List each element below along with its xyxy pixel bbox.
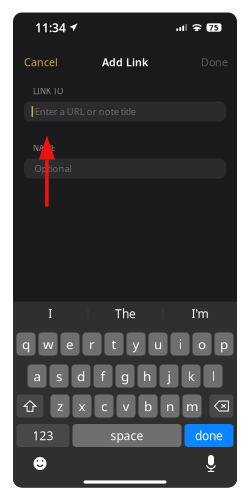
button[interactable]: h (137, 364, 156, 387)
staticText: c (101, 397, 107, 415)
staticText: 11:34 (35, 19, 66, 35)
button[interactable]: p (214, 332, 233, 355)
button[interactable]: f (93, 364, 112, 387)
button[interactable]: c (94, 394, 113, 417)
button[interactable]: e (60, 332, 79, 355)
staticText: I (48, 305, 52, 321)
staticText: a (33, 367, 40, 385)
staticText: k (187, 367, 194, 385)
button[interactable]: space (72, 424, 181, 447)
button[interactable]: k (181, 364, 200, 387)
button[interactable]: s (49, 364, 68, 387)
button[interactable]: Dictation (198, 452, 224, 474)
button[interactable]: Emoji keyboard (27, 452, 53, 474)
staticText: t (111, 335, 116, 353)
staticText: f (100, 367, 105, 385)
staticText: 123 (32, 427, 53, 443)
staticText: d (77, 367, 85, 385)
button[interactable]: a (27, 364, 46, 387)
staticText: I'm (192, 305, 209, 321)
staticText: Cancel (24, 55, 58, 69)
button[interactable]: 123 (16, 424, 69, 447)
button[interactable]: Shift (16, 394, 43, 417)
staticText: x (78, 397, 85, 415)
button[interactable]: n (160, 394, 179, 417)
button[interactable]: w (38, 332, 57, 355)
button[interactable]: t (104, 332, 123, 355)
button[interactable]: l (203, 364, 222, 387)
staticText: y (132, 335, 139, 353)
button[interactable]: done (184, 424, 233, 447)
button[interactable]: m (182, 394, 201, 417)
staticText: 75 (209, 22, 219, 33)
button[interactable]: Delete (209, 394, 233, 417)
staticText: v (122, 397, 129, 415)
staticText: s (56, 367, 62, 385)
staticText: The (115, 305, 136, 321)
button[interactable]: Enter a URL or note title (24, 101, 226, 121)
staticText: q (22, 335, 30, 353)
button[interactable]: Done (192, 50, 237, 74)
staticText: j (167, 367, 170, 385)
staticText: w (43, 335, 53, 353)
button[interactable]: I'm (163, 301, 237, 325)
button[interactable]: I (13, 301, 88, 325)
staticText: Add Link (102, 55, 148, 69)
button[interactable]: b (138, 394, 157, 417)
button[interactable]: g (115, 364, 134, 387)
staticText: Optional (34, 162, 71, 175)
button[interactable]: x (72, 394, 91, 417)
button[interactable]: z (50, 394, 69, 417)
staticText: z (57, 397, 63, 415)
button[interactable]: d (71, 364, 90, 387)
staticText: u (154, 335, 162, 353)
staticText: m (186, 397, 198, 415)
staticText: n (166, 397, 174, 415)
button[interactable]: r (82, 332, 101, 355)
staticText: l (211, 367, 214, 385)
staticText: space (110, 427, 143, 443)
button[interactable]: o (192, 332, 211, 355)
staticText: LINK TO (33, 86, 63, 96)
button[interactable]: j (159, 364, 178, 387)
staticText: i (178, 335, 181, 353)
staticText: NAME (33, 143, 55, 153)
staticText: e (66, 335, 74, 353)
staticText: Enter a URL or note title (35, 105, 136, 118)
button[interactable]: v (116, 394, 135, 417)
button[interactable]: i (170, 332, 189, 355)
staticText: g (121, 367, 129, 385)
button[interactable]: Optional (24, 158, 226, 178)
staticText: h (143, 367, 151, 385)
staticText: Done (201, 55, 228, 69)
button[interactable]: Cancel (13, 50, 70, 74)
staticText: b (144, 397, 152, 415)
staticText: done (195, 427, 223, 443)
staticText: p (220, 335, 228, 353)
staticText: r (89, 335, 95, 353)
staticText: o (198, 335, 206, 353)
button[interactable]: q (16, 332, 35, 355)
button[interactable]: y (126, 332, 145, 355)
button[interactable]: u (148, 332, 167, 355)
button[interactable]: The (88, 301, 162, 325)
